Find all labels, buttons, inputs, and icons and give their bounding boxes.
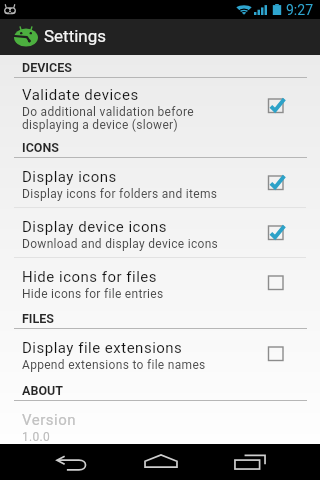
button[interactable]: Checkbox [268, 175, 284, 191]
button[interactable]: Display file extensions [0, 329, 320, 379]
button[interactable]: Display device icons [0, 208, 320, 258]
staticText: Version [22, 411, 76, 429]
staticText: Hide icons for files [22, 268, 158, 286]
staticText: ABOUT [22, 383, 63, 398]
staticText: Hide icons for file entries [22, 287, 164, 301]
staticText: FILES [22, 311, 54, 326]
button[interactable]: Checkbox [268, 346, 284, 362]
button[interactable]: Display icons [0, 158, 320, 208]
button[interactable]: Home [116, 444, 205, 480]
staticText: DEVICES [22, 60, 72, 75]
staticText: Append extensions to file names [22, 358, 206, 372]
staticText: Display icons [22, 168, 117, 186]
button[interactable]: Version [0, 401, 320, 444]
staticText: Settings [44, 26, 107, 46]
staticText: Display icons for folders and items [22, 187, 218, 201]
button[interactable]: Back [27, 444, 116, 480]
button[interactable]: Checkbox [268, 275, 284, 291]
staticText: 9:27 [286, 2, 313, 18]
button[interactable]: Validate devices [0, 78, 320, 133]
staticText: Validate devices [22, 86, 139, 104]
staticText: 1.0.0 [22, 430, 51, 444]
staticText: Display device icons [22, 218, 168, 236]
staticText: ICONS [22, 140, 59, 155]
staticText: Download and display device icons [22, 237, 219, 251]
staticText: Display file extensions [22, 339, 183, 357]
button[interactable]: Checkbox [268, 225, 284, 241]
button[interactable]: Hide icons for files [0, 258, 320, 307]
button[interactable]: Checkbox [268, 98, 284, 114]
button[interactable]: Recent apps [205, 444, 294, 480]
staticText: Do additional validation before displayi… [22, 105, 194, 132]
